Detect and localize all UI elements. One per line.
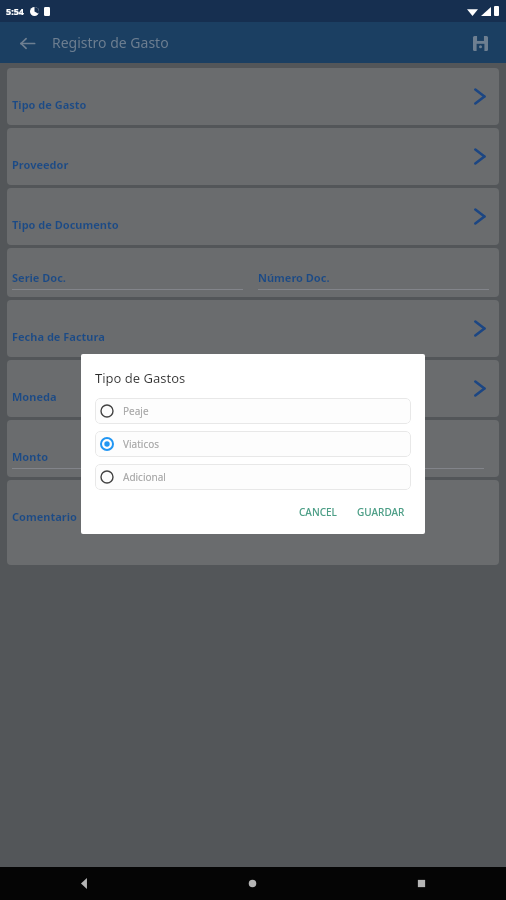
staticText: Serie Doc. (12, 270, 66, 285)
button[interactable]: Viaticos (95, 431, 411, 457)
button[interactable]: Peaje (95, 398, 411, 424)
button[interactable]: Back (0, 867, 168, 900)
button[interactable]: Adicional (95, 464, 411, 490)
staticText: CANCEL (299, 505, 337, 519)
button[interactable]: Save (463, 26, 497, 60)
button[interactable]: Moneda (7, 360, 499, 417)
staticText: Moneda (12, 389, 57, 404)
button[interactable]: Fecha de Factura (7, 300, 499, 357)
staticText: Número Doc. (258, 270, 330, 285)
staticText: Proveedor (12, 157, 69, 172)
staticText: Tipo de Gastos (95, 369, 186, 387)
button[interactable]: Recents (337, 867, 506, 900)
button[interactable]: Tipo de Documento (7, 188, 499, 245)
button[interactable]: Home (168, 867, 337, 900)
staticText: Tipo de Gasto (12, 97, 87, 112)
button[interactable]: Comentario (7, 480, 499, 565)
button[interactable]: Número Doc. (253, 248, 499, 297)
staticText: Comentario (12, 509, 77, 524)
staticText: Tipo de Documento (12, 217, 119, 232)
staticText: 5:54 (6, 5, 24, 17)
button[interactable]: GUARDAR (351, 500, 411, 524)
button[interactable]: Serie Doc. (7, 248, 253, 297)
staticText: Peaje (123, 404, 149, 418)
staticText: Monto (12, 449, 49, 464)
button[interactable]: Tipo de Gasto (7, 68, 499, 125)
button[interactable]: Back (10, 26, 44, 60)
staticText: Adicional (123, 470, 166, 484)
staticText: Fecha de Factura (12, 329, 105, 344)
staticText: Viaticos (123, 437, 160, 451)
button[interactable]: CANCEL (293, 500, 343, 524)
button[interactable]: Monto (7, 420, 499, 477)
button[interactable]: Proveedor (7, 128, 499, 185)
staticText: Registro de Gasto (52, 33, 169, 52)
staticText: GUARDAR (357, 505, 405, 519)
